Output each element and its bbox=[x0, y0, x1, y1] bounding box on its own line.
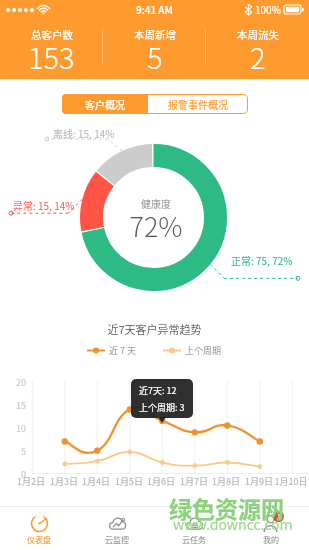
staticText: 异常: 15, 14% bbox=[13, 198, 75, 212]
staticText: 正常: 75, 72% bbox=[231, 253, 293, 267]
staticText: 1月2日 bbox=[12, 475, 50, 488]
staticText: 报警事件概况 bbox=[168, 97, 228, 111]
staticText: 离线: 15, 14% bbox=[53, 126, 115, 140]
staticText: 9:41 AM bbox=[136, 2, 173, 16]
button[interactable]: 本周新增 bbox=[103, 18, 206, 79]
staticText: 健康度 bbox=[114, 196, 198, 210]
staticText: 10 bbox=[0, 422, 26, 435]
button[interactable]: 近 7 天 bbox=[87, 344, 137, 357]
button[interactable]: 本周流失 bbox=[206, 18, 309, 79]
staticText: 72% bbox=[114, 206, 198, 245]
staticText: 1月3日 bbox=[45, 475, 83, 488]
staticText: 153 bbox=[28, 35, 75, 77]
staticText: 绿色资源网 bbox=[169, 491, 284, 524]
staticText: 5 bbox=[147, 35, 163, 77]
staticText: 1月8日 bbox=[207, 475, 245, 488]
staticText: 2 bbox=[250, 35, 266, 77]
staticText: 近 7 天 bbox=[109, 344, 137, 357]
staticText: 20 bbox=[0, 376, 26, 389]
staticText: 总客户数 bbox=[31, 27, 73, 42]
staticText: 15 bbox=[0, 399, 26, 412]
staticText: 本周流失 bbox=[237, 27, 279, 42]
staticText: 上个周期: 3 bbox=[139, 401, 185, 414]
staticText: 1 bbox=[277, 512, 281, 522]
button[interactable]: 云任务 bbox=[155, 507, 232, 550]
button[interactable]: 客户概况 bbox=[62, 94, 148, 114]
staticText: 0 bbox=[0, 468, 26, 481]
staticText: 1月5日 bbox=[110, 475, 148, 488]
button[interactable]: 我的 bbox=[232, 507, 309, 550]
button[interactable]: 上个周期 bbox=[163, 344, 222, 357]
staticText: 1月9日 bbox=[240, 475, 278, 488]
staticText: 云监控 bbox=[105, 534, 129, 546]
staticText: 近7天客户异常趋势 bbox=[0, 321, 309, 337]
button[interactable]: 仪表盘 bbox=[0, 507, 78, 550]
staticText: 我的 bbox=[263, 534, 279, 546]
button[interactable]: 云监控 bbox=[78, 507, 155, 550]
staticText: 上个周期 bbox=[185, 344, 222, 357]
staticText: 1月7日 bbox=[175, 475, 213, 488]
staticText: 客户概况 bbox=[85, 97, 125, 111]
staticText: 1月10日 bbox=[272, 475, 309, 488]
staticText: 近7天: 12 bbox=[139, 384, 177, 397]
staticText: www.downcc.com bbox=[173, 514, 293, 534]
staticText: 仪表盘 bbox=[27, 534, 51, 546]
staticText: 本周新增 bbox=[134, 27, 176, 42]
staticText: 100% bbox=[255, 2, 281, 16]
staticText: 1月6日 bbox=[142, 475, 180, 488]
staticText: 云任务 bbox=[182, 534, 206, 546]
button[interactable]: 报警事件概况 bbox=[148, 94, 248, 114]
button[interactable]: 总客户数 bbox=[0, 18, 103, 79]
staticText: 5 bbox=[0, 445, 26, 458]
staticText: 1月4日 bbox=[77, 475, 115, 488]
